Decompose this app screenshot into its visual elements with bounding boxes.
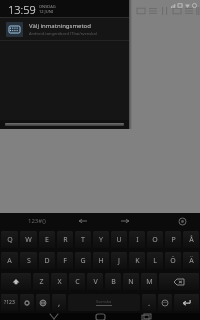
staticText: G xyxy=(80,256,86,266)
staticText: 13:59 xyxy=(8,2,36,17)
staticText: R xyxy=(63,235,68,245)
staticText: Ä xyxy=(189,256,194,266)
staticText: S xyxy=(27,256,31,266)
button[interactable]: P xyxy=(165,231,181,248)
button[interactable]: V xyxy=(87,273,103,290)
staticText: Svenska xyxy=(96,299,112,304)
button[interactable]: Å xyxy=(183,231,199,248)
staticText: ONSDAG xyxy=(39,4,56,9)
staticText: Android-tangentbord (Thai/svenska) xyxy=(29,31,97,36)
staticText: J xyxy=(118,256,120,266)
button[interactable]: Switch language xyxy=(36,294,50,311)
button[interactable]: Voice input xyxy=(174,213,190,229)
button[interactable]: Shift xyxy=(1,273,31,290)
button[interactable]: O xyxy=(147,231,163,248)
button[interactable]: Välj inmatningsmetod xyxy=(0,18,129,40)
button[interactable]: Ö xyxy=(165,252,181,269)
staticText: P xyxy=(171,235,176,245)
staticText: . xyxy=(148,297,151,308)
button[interactable]: Period xyxy=(142,294,156,311)
staticText: K xyxy=(135,256,140,266)
button[interactable]: S xyxy=(20,252,37,269)
staticText: E xyxy=(45,235,49,245)
button[interactable]: M xyxy=(141,273,157,290)
staticText: X xyxy=(57,277,62,287)
staticText: I xyxy=(136,235,139,245)
staticText: Å xyxy=(189,235,194,245)
button[interactable]: D xyxy=(39,252,55,269)
button[interactable]: 123#() xyxy=(24,215,50,227)
button[interactable]: A xyxy=(1,252,18,269)
staticText: C xyxy=(75,277,80,287)
staticText: D xyxy=(44,256,50,266)
staticText: B xyxy=(111,277,116,287)
staticText: , xyxy=(58,297,61,308)
staticText: H xyxy=(98,256,104,266)
staticText: Z xyxy=(39,277,44,287)
staticText: 12 JUNI xyxy=(39,9,54,14)
button[interactable]: U xyxy=(111,231,127,248)
button[interactable]: Next xyxy=(117,213,133,229)
button[interactable]: Toolbar action 3 xyxy=(160,4,170,18)
staticText: 123#() xyxy=(28,217,46,225)
staticText: T xyxy=(81,235,85,245)
staticText: Y xyxy=(99,235,103,245)
button[interactable]: Home xyxy=(87,313,113,320)
button[interactable]: Emoji xyxy=(158,294,172,311)
staticText: M xyxy=(146,277,153,287)
staticText: Välj inmatningsmetod xyxy=(29,22,91,30)
button[interactable]: G xyxy=(75,252,91,269)
other: Status icon xyxy=(170,2,177,9)
button[interactable]: R xyxy=(57,231,73,248)
other: Status icon xyxy=(184,2,191,9)
staticText: U xyxy=(116,235,122,245)
button[interactable]: B xyxy=(105,273,121,290)
button[interactable]: Y xyxy=(93,231,109,248)
button[interactable]: H xyxy=(93,252,109,269)
button[interactable]: Q xyxy=(1,231,18,248)
staticText: A xyxy=(7,256,12,266)
button[interactable]: Previous xyxy=(75,213,91,229)
button[interactable]: Comma xyxy=(52,294,66,311)
staticText: ?123 xyxy=(4,299,15,306)
staticText: L xyxy=(153,256,157,266)
button[interactable]: Toolbar action 5 xyxy=(184,4,194,18)
button[interactable]: X xyxy=(51,273,67,290)
button[interactable]: Toolbar action 6 xyxy=(196,4,200,18)
button[interactable]: K xyxy=(129,252,145,269)
staticText: O xyxy=(152,235,158,245)
button[interactable]: L xyxy=(147,252,163,269)
staticText: W xyxy=(25,235,32,245)
staticText: V xyxy=(93,277,98,287)
button[interactable]: Z xyxy=(33,273,49,290)
button[interactable]: E xyxy=(39,231,55,248)
button[interactable]: Toolbar action 4 xyxy=(172,4,182,18)
staticText: F xyxy=(63,256,67,266)
button[interactable]: Backspace xyxy=(159,273,199,290)
button[interactable]: J xyxy=(111,252,127,269)
button[interactable]: I xyxy=(129,231,145,248)
button[interactable]: Toolbar action 1 xyxy=(136,4,146,18)
button[interactable]: Toolbar action 2 xyxy=(148,4,158,18)
button[interactable]: Recent apps xyxy=(133,313,159,320)
staticText: Ö xyxy=(170,256,176,266)
other: Status icon xyxy=(191,2,198,9)
button[interactable]: W xyxy=(20,231,37,248)
button[interactable]: Space xyxy=(68,294,140,311)
button[interactable]: T xyxy=(75,231,91,248)
button[interactable]: Ä xyxy=(183,252,199,269)
button[interactable]: C xyxy=(69,273,85,290)
button[interactable]: Close notification shade xyxy=(0,120,129,129)
button[interactable]: N xyxy=(123,273,139,290)
staticText: Q xyxy=(7,235,13,245)
button[interactable]: Settings xyxy=(20,294,34,311)
button[interactable]: Enter xyxy=(174,294,199,311)
button[interactable]: Symbols xyxy=(1,294,18,311)
button[interactable]: F xyxy=(57,252,73,269)
button[interactable]: Back xyxy=(41,313,67,320)
other: Status icon xyxy=(177,2,184,9)
staticText: N xyxy=(128,277,134,287)
